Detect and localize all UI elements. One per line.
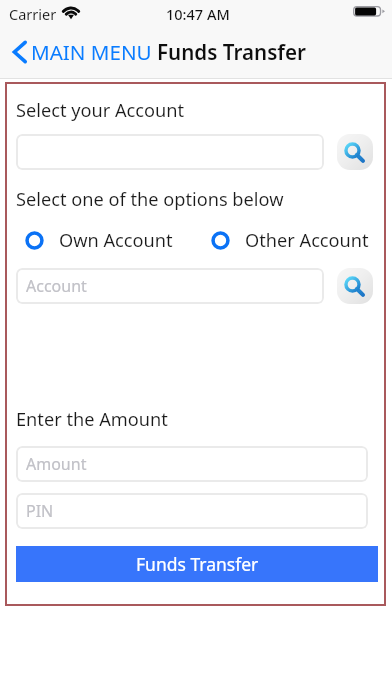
staticText: Own Account bbox=[59, 228, 173, 253]
staticText: Select one of the options below bbox=[16, 187, 284, 212]
button[interactable]: Search bbox=[337, 134, 373, 170]
staticText: Other Account bbox=[245, 228, 369, 253]
button[interactable]: Search bbox=[337, 268, 373, 304]
button[interactable]: Funds Transfer bbox=[16, 546, 378, 582]
button[interactable] bbox=[16, 134, 324, 170]
button[interactable]: PIN bbox=[16, 493, 368, 529]
staticText: 10:47 AM bbox=[166, 4, 230, 24]
staticText: Carrier bbox=[9, 4, 57, 24]
staticText: Account bbox=[26, 275, 87, 297]
staticText: Select your Account bbox=[16, 98, 185, 123]
staticText: MAIN MENU bbox=[31, 38, 152, 66]
staticText: Amount bbox=[26, 453, 87, 475]
button[interactable]: Own Account bbox=[21, 224, 186, 257]
staticText: Funds Transfer bbox=[157, 38, 306, 66]
staticText: Enter the Amount bbox=[16, 407, 168, 432]
button[interactable]: Amount bbox=[16, 446, 368, 482]
button[interactable]: Other Account bbox=[207, 224, 382, 257]
staticText: Funds Transfer bbox=[136, 552, 259, 576]
staticText: PIN bbox=[26, 500, 54, 522]
button[interactable]: Account bbox=[16, 268, 324, 304]
button[interactable]: MAIN MENU bbox=[9, 32, 155, 72]
